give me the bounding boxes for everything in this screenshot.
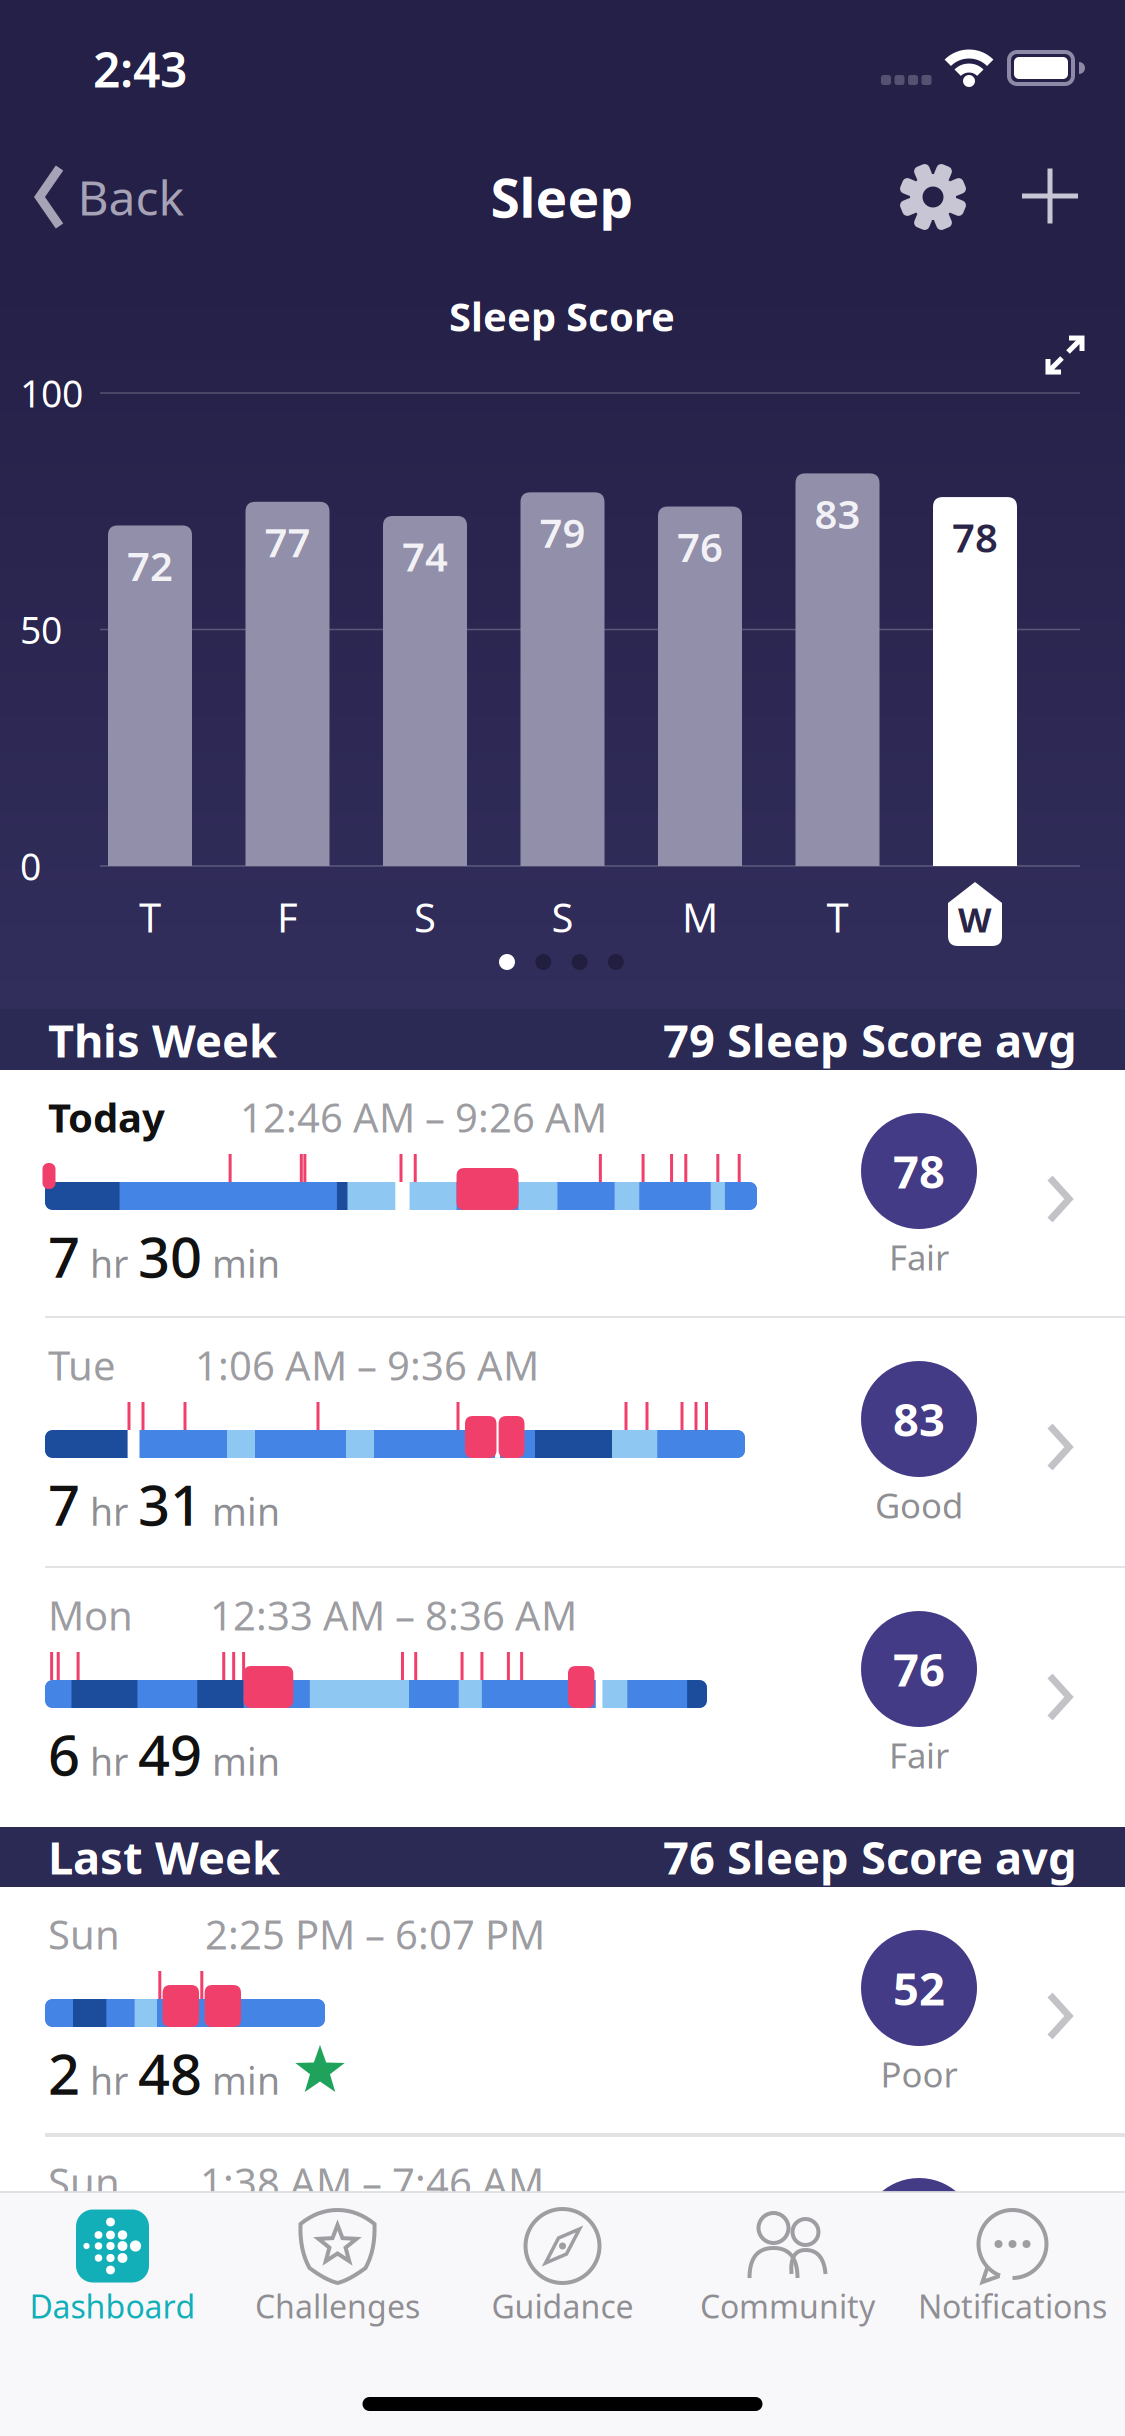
staticText: 79 Sleep Score avg xyxy=(663,1010,1077,1070)
staticText: Challenges xyxy=(255,2285,420,2327)
staticText: 7 xyxy=(48,1467,80,1541)
button[interactable]: Today xyxy=(0,1070,1125,1318)
staticText: min xyxy=(212,1736,280,1786)
staticText: 30 xyxy=(138,1219,202,1293)
staticText: Sun xyxy=(48,1907,120,1960)
button[interactable]: Mon xyxy=(0,1568,1125,1827)
button[interactable]: Community xyxy=(675,2192,900,2392)
staticText: Fair xyxy=(889,1732,949,1778)
staticText: 48 xyxy=(138,2036,202,2110)
staticText: Good xyxy=(875,1482,963,1528)
button[interactable]: Tue xyxy=(0,1318,1125,1568)
button[interactable]: Add xyxy=(1021,167,1079,225)
staticText: 7 xyxy=(48,1219,80,1293)
staticText: 6 xyxy=(48,1717,80,1791)
staticText: hr xyxy=(90,1486,128,1536)
staticText: 83 xyxy=(814,487,860,540)
staticText: 1:38 AM – 7:46 AM xyxy=(200,2155,544,2208)
button[interactable]: Settings xyxy=(898,162,968,232)
staticText: 31 xyxy=(138,1467,202,1541)
staticText: Community xyxy=(700,2285,875,2327)
staticText: 2:25 PM – 6:07 PM xyxy=(205,1907,545,1960)
staticText: 12:33 AM – 8:36 AM xyxy=(210,1588,577,1641)
staticText: T xyxy=(826,890,848,943)
button[interactable]: Dashboard xyxy=(0,2192,225,2392)
staticText: 76 xyxy=(677,520,723,573)
staticText: This Week xyxy=(48,1010,277,1070)
staticText: 12:46 AM – 9:26 AM xyxy=(240,1090,607,1143)
staticText: F xyxy=(277,890,298,943)
staticText: 76 Sleep Score avg xyxy=(663,1827,1077,1887)
staticText: 79 xyxy=(539,506,585,559)
staticText: 72 xyxy=(127,539,173,592)
staticText: Poor xyxy=(880,2051,957,2097)
staticText: M xyxy=(682,890,718,943)
staticText: min xyxy=(212,2055,280,2105)
button[interactable]: Back xyxy=(39,165,184,229)
staticText: 78 xyxy=(893,1141,945,1201)
staticText: 49 xyxy=(138,1717,202,1791)
staticText: 83 xyxy=(893,1389,945,1449)
button[interactable]: Sun xyxy=(0,2135,1125,2192)
staticText: 76 xyxy=(893,1639,945,1699)
staticText: Mon xyxy=(48,1588,133,1641)
staticText: min xyxy=(212,1238,280,1288)
staticText: hr xyxy=(90,1238,128,1288)
staticText: 2:43 xyxy=(93,37,187,101)
staticText: W xyxy=(958,896,992,942)
staticText: min xyxy=(212,1486,280,1536)
staticText: hr xyxy=(90,2055,128,2105)
staticText: 74 xyxy=(402,529,448,582)
staticText: Notifications xyxy=(918,2285,1107,2327)
staticText: 2 xyxy=(48,2036,80,2110)
staticText: T xyxy=(139,890,161,943)
staticText: Sun xyxy=(48,2155,120,2208)
staticText: 77 xyxy=(264,515,310,568)
staticText: 100 xyxy=(20,368,83,418)
staticText: hr xyxy=(90,1736,128,1786)
button[interactable]: Expand chart xyxy=(1045,331,1085,379)
button[interactable]: Notifications xyxy=(900,2192,1125,2392)
staticText: Last Week xyxy=(48,1827,280,1887)
staticText: Back xyxy=(77,165,184,229)
staticText: 0 xyxy=(20,841,41,891)
staticText: 52 xyxy=(893,1958,945,2018)
staticText: Tue xyxy=(48,1338,116,1391)
staticText: S xyxy=(414,890,436,943)
staticText: Sleep xyxy=(490,162,633,232)
staticText: Sleep Score xyxy=(449,289,675,342)
staticText: S xyxy=(551,890,573,943)
button[interactable]: Challenges xyxy=(225,2192,450,2392)
staticText: 78 xyxy=(952,510,998,564)
button[interactable]: Guidance xyxy=(450,2192,675,2392)
button[interactable]: Sun xyxy=(0,1887,1125,2135)
staticText: Today xyxy=(48,1090,165,1143)
staticText: Guidance xyxy=(491,2285,633,2327)
staticText: 1:06 AM – 9:36 AM xyxy=(195,1338,539,1391)
staticText: Dashboard xyxy=(29,2285,195,2327)
staticText: Fair xyxy=(889,1234,949,1280)
staticText: 50 xyxy=(20,605,62,654)
